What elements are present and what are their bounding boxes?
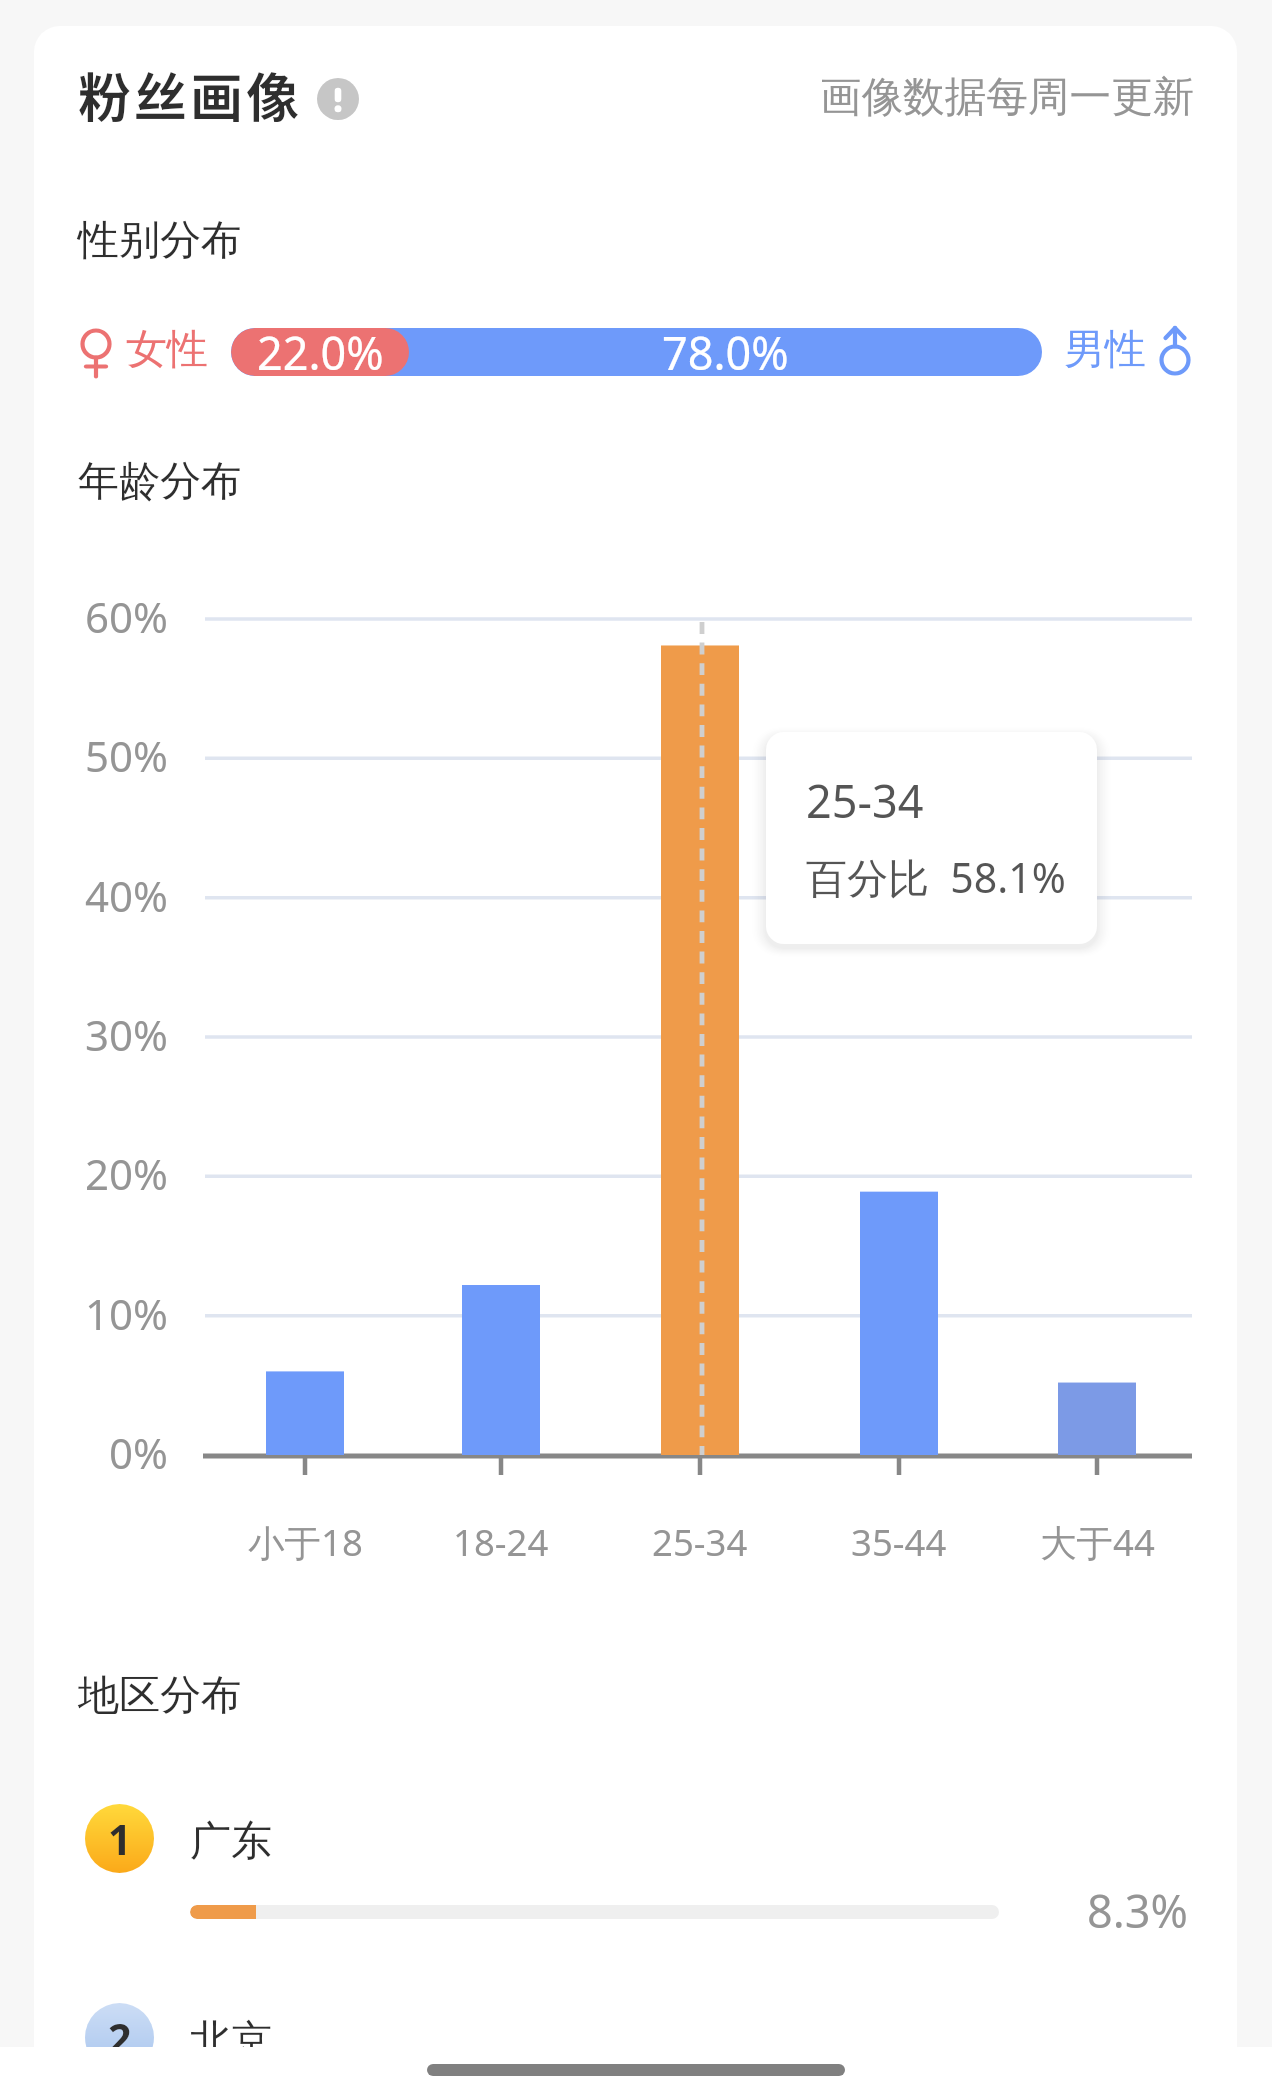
- staticText: 北京: [190, 2015, 272, 2047]
- staticText: 50%: [85, 727, 168, 784]
- staticText: 60%: [85, 588, 168, 645]
- staticText: 18-24: [453, 1517, 549, 1567]
- staticText: 40%: [85, 867, 168, 924]
- button[interactable]: 18-24: [403, 619, 599, 1455]
- button[interactable]: 北京: [45, 1987, 1195, 2047]
- staticText: 1: [108, 1811, 132, 1867]
- staticText: 22.0%: [257, 328, 384, 370]
- staticText: 10%: [85, 1285, 168, 1342]
- button[interactable]: 说明: [317, 78, 359, 120]
- button[interactable]: 小于18: [207, 619, 403, 1455]
- staticText: 男性: [1064, 324, 1146, 376]
- staticText: 35-44: [851, 1517, 947, 1567]
- staticText: 25-34: [806, 770, 924, 831]
- staticText: 2: [108, 2010, 132, 2047]
- button[interactable]: 35-44: [801, 619, 997, 1455]
- staticText: 25-34: [652, 1517, 748, 1567]
- staticText: 30%: [85, 1006, 168, 1063]
- button[interactable]: 男性: [1150, 318, 1210, 388]
- button[interactable]: 25-34: [602, 619, 798, 1455]
- staticText: 广东: [190, 1816, 272, 1868]
- staticText: 地区分布: [78, 1670, 242, 1722]
- staticText: 女性: [126, 324, 208, 376]
- staticText: 年龄分布: [78, 456, 242, 508]
- staticText: 小于18: [248, 1517, 363, 1567]
- staticText: 大于44: [1040, 1517, 1155, 1567]
- button[interactable]: 25-34: [766, 732, 1097, 944]
- button[interactable]: 大于44: [999, 619, 1195, 1455]
- staticText: 0%: [109, 1424, 168, 1481]
- button[interactable]: 广东: [45, 1788, 1195, 1958]
- staticText: 78.0%: [662, 328, 789, 370]
- button[interactable]: 22.0%: [231, 328, 1042, 376]
- staticText: 8.3%: [1087, 1880, 1188, 1941]
- staticText: 粉丝画像: [78, 56, 302, 133]
- staticText: 百分比 58.1%: [806, 849, 1066, 905]
- staticText: 20%: [85, 1145, 168, 1202]
- staticText: 画像数据每周一更新: [820, 71, 1195, 123]
- staticText: 性别分布: [78, 215, 242, 267]
- button[interactable]: 女性: [70, 318, 130, 388]
